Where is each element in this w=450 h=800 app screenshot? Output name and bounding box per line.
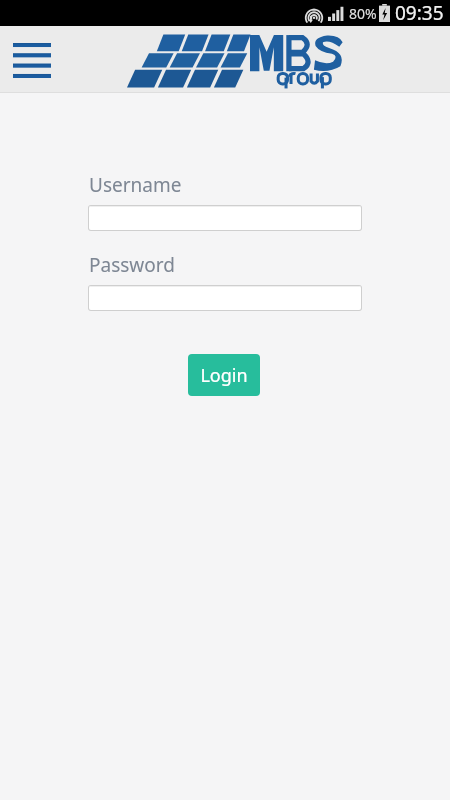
button[interactable]: Open navigation menu <box>8 36 56 84</box>
staticText: Username <box>89 172 182 198</box>
staticText: Password <box>89 252 175 278</box>
button[interactable]: Text input <box>88 285 362 311</box>
button[interactable]: Text input <box>88 205 362 231</box>
staticText: 80% <box>349 4 377 23</box>
staticText: Login <box>200 363 248 388</box>
staticText: 09:35 <box>395 0 444 26</box>
button[interactable]: Login <box>188 354 260 396</box>
